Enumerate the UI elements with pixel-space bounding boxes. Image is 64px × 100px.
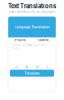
staticText: Text Translations — [8, 2, 56, 10]
button[interactable]: Favorite — [32, 65, 42, 70]
staticText: Write or paste your text here — [13, 43, 46, 50]
button[interactable]: Share — [42, 65, 53, 70]
staticText: English — [15, 38, 26, 41]
staticText: Spanish — [38, 38, 49, 41]
button[interactable]: Speak — [11, 65, 21, 70]
button[interactable]: Translate — [10, 70, 54, 77]
staticText: Language Translation — [14, 25, 49, 29]
staticText: Translate — [24, 71, 39, 75]
button[interactable]: Copy — [21, 65, 32, 70]
staticText: Easy Translations for all languages — [9, 10, 55, 13]
